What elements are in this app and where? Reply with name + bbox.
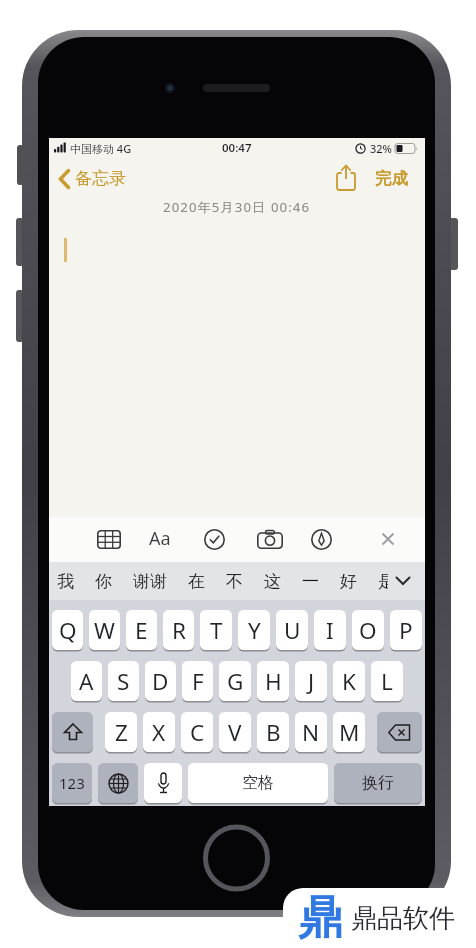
staticText: T <box>210 615 223 646</box>
button[interactable]: 换行 <box>334 763 422 803</box>
button[interactable]: A <box>71 661 102 701</box>
staticText: 32% <box>370 141 392 156</box>
button[interactable]: 空格 <box>188 763 328 803</box>
button[interactable]: C <box>181 712 213 752</box>
staticText: R <box>172 615 186 646</box>
staticText: S <box>117 666 130 697</box>
button[interactable]: 123 <box>52 763 92 803</box>
staticText: A <box>79 666 94 697</box>
staticText: 中国移动 4G <box>70 141 132 156</box>
staticText: G <box>227 666 244 697</box>
button[interactable]: 一 <box>302 571 319 592</box>
staticText: D <box>152 666 169 697</box>
staticText: V <box>228 717 242 748</box>
staticText: 2020年5月30日 00:46 <box>163 198 311 216</box>
staticText: B <box>266 717 281 748</box>
staticText: 00:47 <box>222 140 252 156</box>
button[interactable]: 备忘录 <box>59 168 126 189</box>
button[interactable]: Aa <box>149 526 171 551</box>
staticText: U <box>284 615 301 646</box>
staticText: N <box>302 717 320 748</box>
button[interactable]: 这 <box>264 571 281 592</box>
staticText: H <box>265 666 282 697</box>
button[interactable]: E <box>126 610 157 650</box>
staticText: F <box>192 666 204 697</box>
button[interactable]: 我 <box>57 571 74 592</box>
staticText: L <box>381 666 393 697</box>
button[interactable]: R <box>163 610 194 650</box>
staticText: I <box>326 615 334 646</box>
staticText: 鼎品软件 <box>351 902 455 935</box>
button[interactable]: Z <box>105 712 137 752</box>
button[interactable] <box>52 712 93 752</box>
button[interactable] <box>335 164 357 192</box>
button[interactable] <box>381 532 395 546</box>
button[interactable]: 你 <box>95 571 112 592</box>
button[interactable]: Y <box>238 610 270 650</box>
button[interactable]: T <box>200 610 232 650</box>
staticText: C <box>190 717 205 748</box>
button[interactable] <box>97 530 121 549</box>
staticText: M <box>339 717 360 748</box>
button[interactable]: 不 <box>226 571 243 592</box>
button[interactable] <box>204 529 225 550</box>
staticText: Z <box>115 717 128 748</box>
staticText: 空格 <box>242 773 274 793</box>
button[interactable] <box>144 763 182 803</box>
staticText: 鼎 <box>298 890 343 947</box>
button[interactable]: S <box>108 661 139 701</box>
button[interactable]: I <box>314 610 346 650</box>
button[interactable]: 在 <box>188 571 205 592</box>
button[interactable] <box>98 763 138 803</box>
button[interactable]: L <box>371 661 403 701</box>
staticText: J <box>308 666 315 697</box>
staticText: E <box>135 615 148 646</box>
staticText: K <box>342 666 356 697</box>
staticText: W <box>94 615 115 646</box>
staticText: Y <box>248 615 261 646</box>
button[interactable]: U <box>276 610 308 650</box>
button[interactable]: O <box>352 610 384 650</box>
button[interactable]: M <box>333 712 365 752</box>
button[interactable]: 谢谢 <box>133 571 167 592</box>
button[interactable]: G <box>219 661 251 701</box>
button[interactable]: F <box>182 661 213 701</box>
button[interactable]: W <box>89 610 120 650</box>
staticText: 备忘录 <box>75 168 126 189</box>
button[interactable]: V <box>219 712 251 752</box>
button[interactable]: K <box>333 661 365 701</box>
staticText: 是 <box>378 571 388 592</box>
button[interactable]: D <box>145 661 176 701</box>
button[interactable]: B <box>257 712 289 752</box>
button[interactable]: P <box>390 610 422 650</box>
button[interactable]: 完成 <box>375 168 408 189</box>
button[interactable] <box>395 576 411 586</box>
button[interactable] <box>311 529 332 550</box>
staticText: 123 <box>59 773 85 793</box>
button[interactable]: J <box>295 661 327 701</box>
staticText: 换行 <box>362 773 394 793</box>
button[interactable]: H <box>257 661 289 701</box>
staticText: X <box>152 717 166 748</box>
button[interactable]: X <box>143 712 175 752</box>
staticText: Q <box>59 615 77 646</box>
button[interactable]: 好 <box>340 571 357 592</box>
button[interactable]: N <box>295 712 327 752</box>
button[interactable] <box>377 712 422 752</box>
button[interactable]: Q <box>52 610 83 650</box>
staticText: Aa <box>149 526 171 551</box>
staticText: P <box>399 615 413 646</box>
staticText: O <box>359 615 377 646</box>
button[interactable] <box>257 530 283 549</box>
